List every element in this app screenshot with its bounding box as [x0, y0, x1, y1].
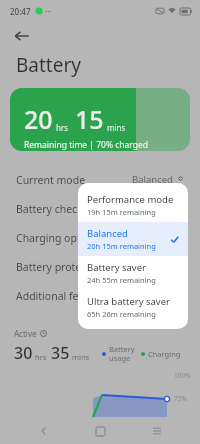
button[interactable]: Additional features [0, 281, 200, 310]
staticText: 30 [14, 342, 33, 364]
button[interactable]: Ultra battery saver [78, 290, 188, 324]
button[interactable]: Battery saver [78, 256, 188, 290]
staticText: Balanced [87, 227, 128, 240]
button[interactable]: Back [31, 418, 57, 444]
staticText: 20:47 [10, 6, 31, 17]
staticText: Charging [148, 349, 181, 359]
staticText: 75% [174, 394, 187, 403]
button[interactable]: Current mode [0, 165, 200, 194]
staticText: 65h 26m remaining [87, 309, 156, 319]
button[interactable]: Charging options [0, 223, 200, 252]
staticText: Battery usage [109, 344, 135, 363]
staticText: ··· [45, 6, 52, 17]
staticText: hrs [56, 122, 69, 133]
staticText: Current mode [16, 173, 86, 187]
staticText: Ultra battery saver [87, 295, 170, 308]
staticText: Performance mode [87, 193, 174, 206]
button[interactable]: 20 [10, 88, 190, 151]
staticText: 20 [24, 102, 53, 136]
staticText: 100% [174, 371, 191, 380]
staticText: mins [72, 352, 90, 362]
staticText: Battery protection [16, 260, 106, 274]
button[interactable]: Balanced [78, 222, 188, 256]
button[interactable]: Battery check-up [0, 194, 200, 223]
staticText: mins [107, 122, 126, 133]
staticText: Active [14, 328, 37, 339]
button[interactable]: Recents [144, 418, 170, 444]
button[interactable]: Performance mode [78, 188, 188, 222]
staticText: 24h 55m remaining [87, 275, 156, 285]
staticText: Remaining time | 70% charged [24, 139, 149, 151]
staticText: 20h 15m remaining [87, 241, 156, 251]
staticText: 35 [51, 342, 70, 364]
staticText: Charging options [16, 231, 102, 245]
staticText: Balanced [132, 173, 173, 186]
button[interactable]: Home [87, 418, 113, 444]
staticText: Battery check-up [16, 202, 100, 216]
staticText: Additional features [16, 289, 110, 303]
staticText: 19h 15m remaining [87, 207, 156, 217]
staticText: hrs [35, 352, 47, 362]
staticText: Battery [16, 52, 81, 78]
button[interactable]: Back [8, 22, 36, 50]
button[interactable]: Battery protection [0, 252, 200, 281]
staticText: 15 [75, 102, 104, 136]
staticText: Battery saver [87, 261, 146, 274]
